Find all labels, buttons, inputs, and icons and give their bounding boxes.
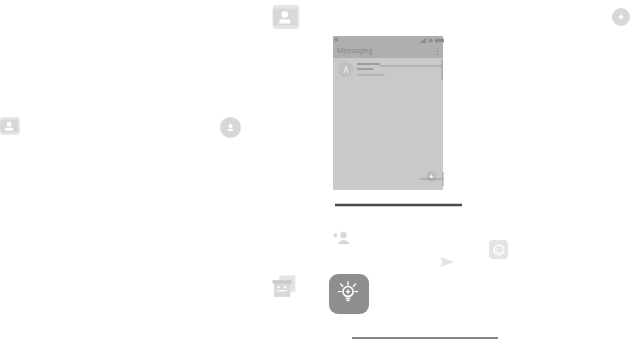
button[interactable]: Delete: [272, 274, 298, 300]
button[interactable]: New message: [426, 171, 437, 182]
button[interactable]: Contact: [220, 117, 241, 138]
staticText: A: [343, 64, 349, 75]
button[interactable]: A: [333, 58, 443, 86]
button[interactable]: Send: [438, 253, 456, 271]
button[interactable]: Add: [612, 8, 630, 26]
button[interactable]: Emoji: [489, 240, 508, 259]
button[interactable]: Contacts: [0, 115, 21, 137]
button[interactable]: Contacts: [271, 2, 301, 32]
staticText: Messaging: [337, 46, 373, 56]
button[interactable]: Tip: [329, 274, 369, 314]
button[interactable]: Add contact: [333, 230, 351, 248]
